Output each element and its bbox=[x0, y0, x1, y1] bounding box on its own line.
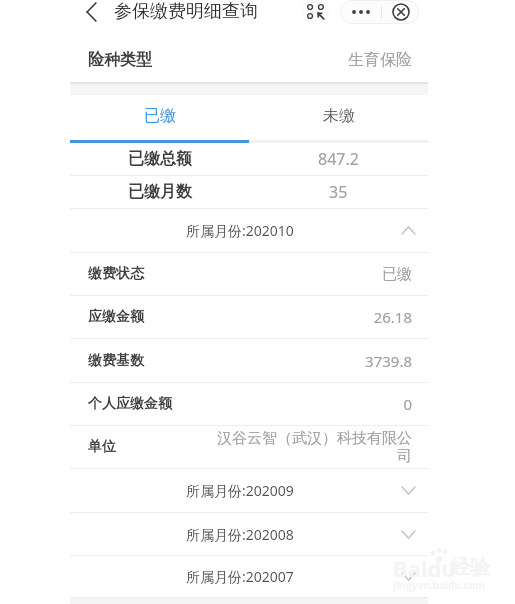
staticText: 已缴月数 bbox=[128, 182, 192, 202]
button[interactable]: 应缴金额 bbox=[70, 296, 428, 338]
staticText: 0 bbox=[216, 394, 412, 414]
button[interactable]: 已缴月数 bbox=[70, 176, 428, 208]
staticText: 847.2 bbox=[318, 148, 359, 170]
button[interactable]: 所属月份:202008 bbox=[70, 513, 428, 555]
staticText: 已缴总额 bbox=[128, 149, 192, 169]
staticText: 3739.8 bbox=[216, 351, 412, 371]
button[interactable]: 缴费状态 bbox=[70, 253, 428, 295]
button[interactable]: 已缴总额 bbox=[70, 143, 428, 175]
staticText: jingyan.baidu.com bbox=[393, 578, 485, 592]
button[interactable]: 个人应缴金额 bbox=[70, 383, 428, 425]
staticText: 参保缴费明细查询 bbox=[114, 0, 258, 23]
staticText: 35 bbox=[329, 181, 348, 203]
button[interactable]: Back bbox=[79, 0, 104, 24]
staticText: 单位 bbox=[88, 438, 116, 456]
button[interactable]: 所属月份:202007 bbox=[70, 556, 428, 597]
staticText: 所属月份:202007 bbox=[186, 567, 294, 586]
other: Collapse bbox=[402, 227, 415, 234]
staticText: 生育保险 bbox=[348, 50, 412, 70]
staticText: 缴费基数 bbox=[88, 352, 144, 370]
other: Expand bbox=[402, 531, 415, 538]
button[interactable]: 单位 bbox=[70, 426, 428, 468]
staticText: 所属月份:202009 bbox=[186, 481, 294, 500]
staticText: 个人应缴金额 bbox=[88, 395, 172, 413]
button[interactable]: 缴费基数 bbox=[70, 339, 428, 382]
staticText: 险种类型 bbox=[88, 50, 152, 70]
other: Expand bbox=[402, 487, 415, 494]
staticText: 已缴 bbox=[216, 265, 412, 284]
staticText: Baidu bbox=[393, 553, 456, 583]
button[interactable]: Mini program menu bbox=[301, 0, 330, 24]
button[interactable]: 所属月份:202010 bbox=[70, 209, 428, 252]
other: Expand bbox=[402, 573, 415, 580]
staticText: 汉谷云智（武汉）科技有限公司 bbox=[216, 429, 412, 466]
staticText: 已缴 bbox=[144, 106, 176, 126]
button[interactable]: 已缴 bbox=[70, 95, 249, 140]
staticText: 应缴金额 bbox=[88, 308, 144, 326]
button[interactable]: 所属月份:202009 bbox=[70, 469, 428, 512]
staticText: 缴费状态 bbox=[88, 265, 144, 283]
button[interactable]: Close bbox=[382, 0, 419, 24]
staticText: 26.18 bbox=[216, 307, 412, 327]
button[interactable]: 险种类型 bbox=[0, 26, 515, 82]
button[interactable]: More bbox=[340, 0, 381, 24]
staticText: 未缴 bbox=[323, 106, 355, 126]
staticText: 所属月份:202008 bbox=[186, 525, 294, 544]
staticText: 所属月份:202010 bbox=[186, 221, 294, 240]
staticText: 经验 bbox=[450, 555, 490, 580]
button[interactable]: 未缴 bbox=[249, 95, 428, 140]
